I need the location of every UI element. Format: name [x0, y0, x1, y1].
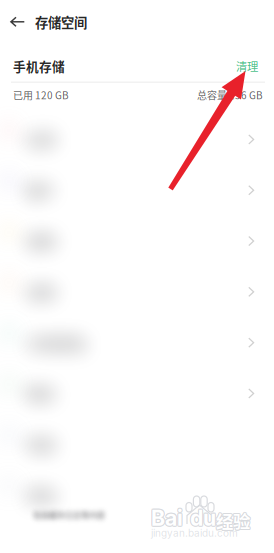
staticText: 已用 120 GB	[13, 88, 69, 102]
staticText: 经验	[216, 507, 250, 532]
staticText: du	[190, 506, 216, 532]
staticText: 手机存储	[13, 57, 65, 75]
staticText: 经验	[216, 508, 250, 533]
button[interactable]: Storage item	[0, 170, 274, 210]
button[interactable]: Storage item	[0, 323, 274, 363]
staticText: du	[189, 506, 215, 532]
staticText: 总容量 256 GB	[197, 88, 263, 102]
staticText: Bai	[150, 505, 182, 531]
button[interactable]: Storage item	[0, 272, 274, 312]
staticText: 经验	[217, 508, 251, 533]
staticText: Bai	[151, 506, 183, 532]
staticText: du	[191, 504, 217, 530]
staticText: Bai	[150, 504, 182, 530]
staticText: 经验	[215, 509, 249, 534]
staticText: Bai	[151, 505, 183, 531]
staticText: 经验	[215, 508, 249, 533]
staticText: Bai	[150, 506, 182, 532]
staticText: 经验	[216, 509, 250, 534]
staticText: 存储空间	[35, 12, 87, 32]
staticText: jingyan.baidu.com	[151, 527, 238, 539]
button[interactable]: Storage item	[0, 119, 274, 159]
button[interactable]: Storage item	[0, 424, 274, 464]
staticText: Bai	[152, 505, 184, 531]
staticText: du	[191, 506, 217, 532]
button[interactable]: 清理	[232, 55, 262, 77]
staticText: 清理	[236, 58, 258, 74]
staticText: du	[191, 505, 217, 531]
staticText: 经验	[217, 509, 251, 534]
button[interactable]: Storage item	[0, 373, 274, 413]
staticText: 经验	[217, 507, 251, 532]
staticText: du	[190, 505, 216, 531]
button[interactable]: Storage item	[0, 475, 274, 515]
staticText: du	[189, 505, 215, 531]
staticText: Bai	[151, 504, 183, 530]
staticText: 经验	[215, 507, 249, 532]
staticText: du	[189, 504, 215, 530]
staticText: Bai	[152, 504, 184, 530]
staticText: Bai	[152, 506, 184, 532]
button[interactable]: Storage item	[0, 221, 274, 261]
staticText: du	[190, 504, 216, 530]
button[interactable]: Back	[0, 0, 274, 44]
